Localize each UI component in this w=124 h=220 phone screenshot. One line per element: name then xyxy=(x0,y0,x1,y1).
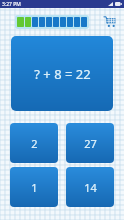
button[interactable] xyxy=(15,15,89,29)
staticText: ? + 8 = 22 xyxy=(34,65,91,83)
staticText: 1 xyxy=(31,180,38,195)
button[interactable]: 14 xyxy=(66,167,114,207)
button[interactable]: ? + 8 = 22 xyxy=(11,36,113,111)
button[interactable]: Shop xyxy=(100,13,118,30)
button[interactable]: 27 xyxy=(66,123,114,163)
button[interactable]: 1 xyxy=(10,167,58,207)
staticText: 14 xyxy=(84,180,97,195)
button[interactable]: 2 xyxy=(10,123,58,163)
staticText: 2 xyxy=(31,136,38,151)
staticText: 3:27 PM xyxy=(2,1,21,8)
staticText: 27 xyxy=(84,136,97,151)
